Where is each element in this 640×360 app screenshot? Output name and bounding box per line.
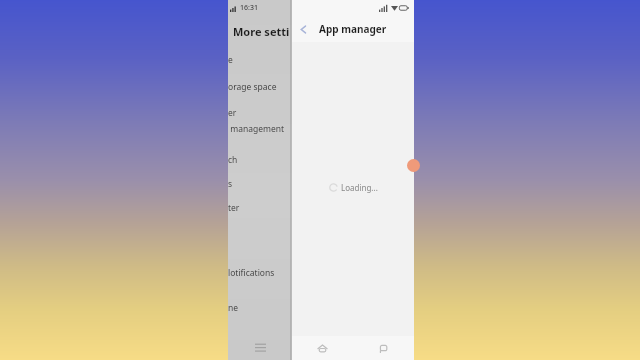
button[interactable]: Home: [292, 336, 353, 360]
staticText: ne: [228, 302, 239, 314]
button[interactable]: Assistant: [407, 159, 420, 172]
button[interactable]: e: [228, 53, 292, 66]
button[interactable]: er: [228, 106, 292, 119]
staticText: App manager: [319, 22, 387, 36]
staticText: More setti: [233, 24, 290, 39]
button[interactable]: Back: [353, 336, 414, 360]
staticText: ter: [228, 202, 240, 214]
staticText: s: [228, 178, 233, 190]
button[interactable]: orage space: [228, 80, 292, 93]
staticText: management: [228, 123, 285, 135]
staticText: e: [228, 54, 233, 66]
button[interactable]: management: [228, 122, 292, 135]
button[interactable]: Recents: [247, 336, 273, 360]
staticText: orage space: [228, 81, 277, 93]
staticText: ch: [228, 154, 238, 166]
button[interactable]: Back: [292, 18, 314, 40]
button[interactable]: s: [228, 177, 292, 190]
staticText: 16:31: [240, 3, 258, 13]
button[interactable]: ne: [228, 301, 292, 314]
staticText: lotifications: [228, 267, 275, 279]
staticText: Loading...: [341, 182, 378, 193]
staticText: er: [228, 107, 237, 119]
button[interactable]: ter: [228, 201, 292, 214]
button[interactable]: lotifications: [228, 266, 292, 279]
button[interactable]: ch: [228, 153, 292, 166]
